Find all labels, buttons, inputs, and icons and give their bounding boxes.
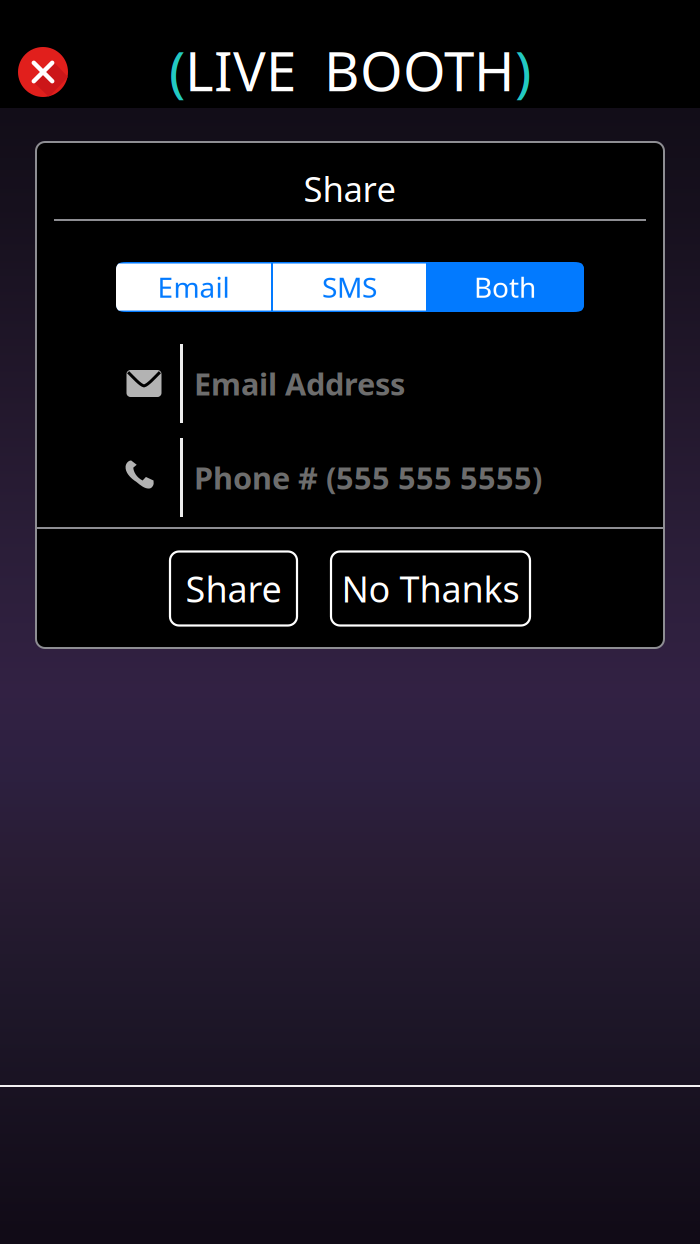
staticText: Share — [303, 165, 396, 211]
staticText: Both — [474, 268, 536, 306]
button[interactable]: No Thanks — [331, 551, 530, 625]
button[interactable]: Email — [116, 263, 271, 310]
staticText: No Thanks — [341, 565, 519, 612]
staticText: SMS — [322, 268, 377, 306]
button[interactable]: Both — [426, 263, 584, 310]
staticText: ) — [515, 34, 531, 106]
staticText: LIVE BOOTH — [185, 34, 515, 106]
button[interactable]: Share — [170, 551, 297, 625]
staticText: Phone # (555 555 5555) — [194, 457, 542, 498]
button[interactable]: Email Address — [36, 344, 664, 423]
staticText: Email Address — [194, 363, 405, 404]
button[interactable]: SMS — [273, 263, 426, 310]
button[interactable]: Close — [18, 47, 68, 97]
staticText: Email — [157, 268, 229, 306]
button[interactable]: Phone # (555 555 5555) — [36, 438, 664, 517]
staticText: Share — [185, 565, 281, 612]
staticText: ( — [169, 34, 185, 106]
